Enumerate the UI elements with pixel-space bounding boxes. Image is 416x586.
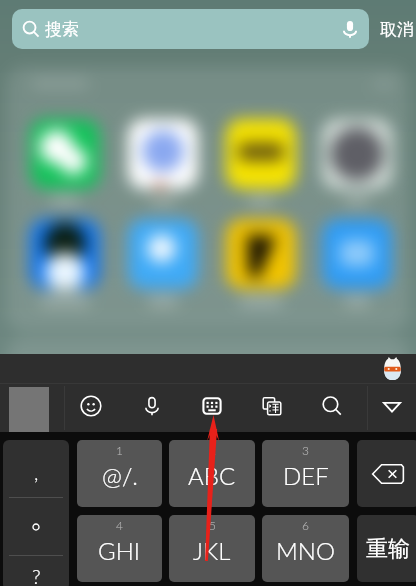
button[interactable]: 5 <box>169 515 255 582</box>
staticText: 6 <box>302 518 309 532</box>
staticText: ? <box>32 564 41 586</box>
button[interactable]: 取消 <box>380 19 414 40</box>
button[interactable] <box>3 498 69 555</box>
button[interactable]: Assistant <box>383 357 402 380</box>
button[interactable]: 6 <box>262 515 349 582</box>
staticText: 2 <box>209 443 216 457</box>
staticText: MNO <box>276 536 335 565</box>
staticText: JKL <box>193 536 231 565</box>
staticText: 重输 <box>366 535 410 563</box>
button[interactable]: 重输 <box>357 515 416 582</box>
staticText: , <box>34 460 39 484</box>
button[interactable]: 3 <box>262 440 349 507</box>
button[interactable]: 4 <box>77 515 162 582</box>
staticText: 取消 <box>380 19 414 40</box>
button[interactable]: 搜索 <box>12 9 369 49</box>
staticText: 1 <box>116 443 123 457</box>
button[interactable]: Emoji <box>78 393 104 419</box>
button[interactable]: Backspace <box>357 440 416 507</box>
staticText: 4 <box>116 518 123 532</box>
button[interactable]: Collapse <box>379 393 405 419</box>
staticText: 3 <box>302 443 309 457</box>
button[interactable]: Keyboard <box>199 393 225 419</box>
staticText: 5 <box>209 518 216 532</box>
button[interactable]: ? <box>3 556 69 586</box>
staticText: DEF <box>283 461 329 490</box>
staticText: @/. <box>102 461 138 490</box>
staticText: 搜索 <box>45 19 79 40</box>
button[interactable]: Voice input <box>139 393 165 419</box>
staticText: ABC <box>188 461 236 490</box>
button[interactable]: 2 <box>169 440 255 507</box>
button[interactable]: , <box>3 440 69 497</box>
button[interactable]: Translate <box>259 393 285 419</box>
button[interactable]: Search <box>319 393 345 419</box>
staticText: GHI <box>98 536 141 565</box>
button[interactable]: 1 <box>77 440 162 507</box>
